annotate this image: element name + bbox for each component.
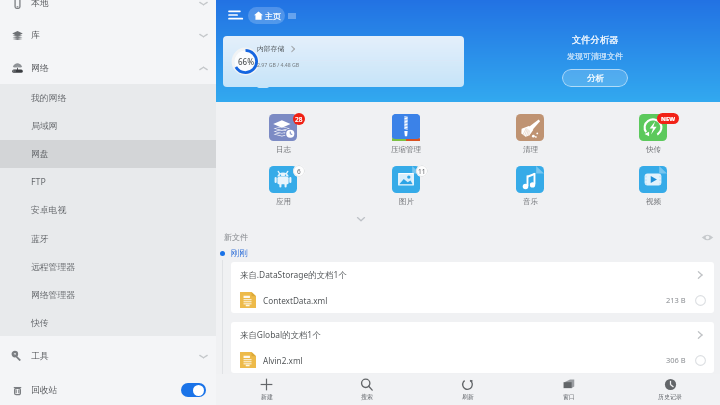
button[interactable]: 搜索 <box>316 374 417 405</box>
button[interactable]: 网盘 <box>0 140 216 168</box>
staticText: 2.97 GB / 4.48 GB <box>257 61 300 68</box>
button[interactable]: 音乐 <box>506 166 554 207</box>
staticText: 工具 <box>31 351 49 362</box>
staticText: 远程管理器 <box>31 262 75 273</box>
button[interactable]: Alvin2.xml <box>231 347 714 373</box>
staticText: 压缩管理 <box>391 145 421 154</box>
staticText: 28 <box>295 115 303 124</box>
button[interactable]: 网络管理器 <box>0 281 216 309</box>
staticText: NEW <box>661 115 676 123</box>
button[interactable]: 历史记录 <box>619 374 720 405</box>
staticText: 6 <box>297 167 301 176</box>
staticText: 日志 <box>276 145 291 154</box>
staticText: 我的网络 <box>31 93 67 104</box>
staticText: 刷新 <box>462 393 474 401</box>
staticText: 音乐 <box>523 197 538 206</box>
button[interactable]: 清理 <box>506 114 554 155</box>
button[interactable]: 日志 <box>259 114 307 155</box>
button[interactable]: 来自Global的文档1个 <box>231 322 714 373</box>
button[interactable]: 本地 <box>0 0 216 18</box>
button[interactable]: ContextData.xml <box>231 287 714 313</box>
button[interactable]: 应用 <box>259 166 307 207</box>
staticText: 回收站 <box>31 385 58 396</box>
staticText: 图片 <box>399 197 414 206</box>
staticText: 内部存储 <box>257 44 285 53</box>
staticText: 应用 <box>276 197 291 206</box>
staticText: 网络 <box>31 63 49 74</box>
button[interactable]: 图片 <box>382 166 430 207</box>
button[interactable]: 窗口 <box>518 374 619 405</box>
button[interactable]: 主页 <box>248 7 285 24</box>
staticText: 快传 <box>646 145 661 154</box>
staticText: 窗口 <box>563 393 575 401</box>
staticText: 主页 <box>265 11 281 21</box>
button[interactable]: 蓝牙 <box>0 225 216 253</box>
staticText: 网盘 <box>31 149 49 160</box>
staticText: 网络管理器 <box>31 290 75 301</box>
staticText: 新文件 <box>224 232 248 242</box>
staticText: 本地 <box>31 0 49 9</box>
staticText: 11 <box>418 167 426 176</box>
button[interactable]: 我的网络 <box>0 84 216 112</box>
staticText: 刚刚 <box>231 248 248 259</box>
button[interactable]: FTP <box>0 168 216 196</box>
button[interactable]: 工具 <box>0 341 216 371</box>
button[interactable]: 远程管理器 <box>0 253 216 281</box>
staticText: 视频 <box>646 197 661 206</box>
button[interactable]: Menu <box>224 3 248 27</box>
button[interactable]: 来自Global的文档1个 <box>231 322 714 347</box>
staticText: 分析 <box>587 73 604 84</box>
button[interactable]: 新建 <box>216 374 316 405</box>
button[interactable]: 安卓电视 <box>0 196 216 224</box>
button[interactable]: 刷新 <box>417 374 518 405</box>
staticText: 来自.DataStorage的文档1个 <box>240 269 347 280</box>
staticText: 局域网 <box>31 121 58 132</box>
staticText: ContextData.xml <box>263 295 328 306</box>
button[interactable]: 快传 <box>0 309 216 337</box>
staticText: 66% <box>238 56 254 67</box>
staticText: 库 <box>31 30 40 41</box>
button[interactable] <box>223 36 464 87</box>
staticText: 306 B <box>666 355 686 365</box>
staticText: 历史记录 <box>658 393 682 401</box>
staticText: 清理 <box>523 145 538 154</box>
staticText: 来自Global的文档1个 <box>240 329 321 340</box>
button[interactable]: 来自.DataStorage的文档1个 <box>231 262 714 313</box>
staticText: FTP <box>31 176 46 188</box>
button[interactable]: 回收站 <box>0 375 216 405</box>
button[interactable]: 网络 <box>0 53 216 83</box>
button[interactable]: 压缩管理 <box>382 114 430 155</box>
staticText: 新建 <box>261 393 273 401</box>
staticText: Alvin2.xml <box>263 355 303 366</box>
button[interactable]: 快传 <box>629 114 677 155</box>
staticText: 213 B <box>666 295 686 305</box>
staticText: 发现可清理文件 <box>567 51 623 61</box>
button[interactable]: 来自.DataStorage的文档1个 <box>231 262 714 287</box>
button[interactable]: 库 <box>0 20 216 50</box>
staticText: 快传 <box>31 318 49 329</box>
staticText: 蓝牙 <box>31 234 49 245</box>
button[interactable]: 分析 <box>562 69 628 87</box>
button[interactable]: Preview <box>701 231 714 244</box>
staticText: 安卓电视 <box>31 205 67 216</box>
button[interactable]: 视频 <box>629 166 677 207</box>
button[interactable]: Expand <box>354 212 368 226</box>
staticText: 文件分析器 <box>572 34 619 46</box>
staticText: 搜索 <box>361 393 373 401</box>
button[interactable]: 局域网 <box>0 112 216 140</box>
